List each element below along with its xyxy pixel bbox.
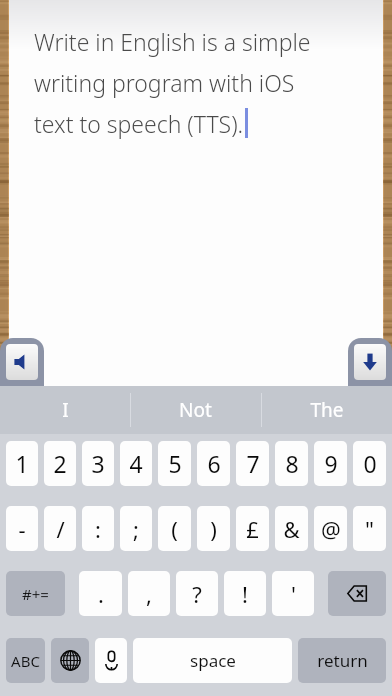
staticText: 2 (53, 448, 67, 479)
button[interactable]: ' (272, 571, 314, 616)
button[interactable]: Backspace (328, 571, 386, 616)
button[interactable]: £ (236, 506, 269, 551)
staticText: . (98, 579, 104, 609)
button[interactable]: @ (314, 506, 347, 551)
staticText: ? (192, 579, 202, 609)
staticText: / (56, 514, 65, 544)
staticText: ; (133, 514, 139, 544)
staticText: #+= (22, 584, 49, 604)
staticText: ! (242, 579, 248, 609)
staticText: text to speech (TTS). (34, 108, 244, 139)
button[interactable]: 9 (314, 441, 347, 486)
button[interactable]: " (353, 506, 386, 551)
button[interactable]: ? (176, 571, 218, 616)
button[interactable]: 0 (353, 441, 386, 486)
staticText: & (283, 514, 300, 544)
staticText: 4 (129, 448, 143, 479)
staticText: The (310, 397, 344, 423)
button[interactable]: ; (120, 506, 152, 551)
staticText: Not (179, 397, 212, 423)
button[interactable]: 7 (236, 441, 269, 486)
button[interactable]: : (82, 506, 114, 551)
staticText: : (95, 514, 101, 544)
staticText: 3 (91, 448, 105, 479)
staticText: - (18, 514, 26, 544)
staticText: return (317, 649, 368, 672)
staticText: 9 (324, 448, 338, 479)
staticText: Write in English is a simple (34, 26, 311, 57)
button[interactable]: ) (197, 506, 230, 551)
staticText: 5 (168, 448, 182, 479)
staticText: " (365, 514, 374, 544)
button[interactable]: #+= (6, 571, 65, 616)
button[interactable]: 4 (120, 441, 152, 486)
button[interactable]: I (0, 386, 130, 434)
staticText: I (62, 397, 69, 423)
button[interactable]: The (261, 386, 392, 434)
button[interactable]: 1 (6, 441, 38, 486)
button[interactable]: return (298, 638, 386, 683)
button[interactable]: - (6, 506, 38, 551)
button[interactable]: ! (224, 571, 266, 616)
button[interactable]: . (79, 571, 122, 616)
button[interactable]: Change keyboard (51, 638, 89, 683)
button[interactable]: 2 (44, 441, 76, 486)
staticText: 0 (363, 448, 377, 479)
staticText: @ (321, 514, 341, 544)
button[interactable]: & (275, 506, 308, 551)
button[interactable]: ( (158, 506, 191, 551)
staticText: ' (291, 579, 296, 609)
button[interactable]: , (128, 571, 170, 616)
button[interactable]: 3 (82, 441, 114, 486)
button[interactable]: space (133, 638, 292, 683)
staticText: 6 (207, 448, 221, 479)
button[interactable]: Dictation (95, 638, 127, 683)
staticText: ABC (11, 651, 40, 671)
button[interactable]: Not (130, 386, 261, 434)
staticText: space (190, 649, 236, 672)
button[interactable]: / (44, 506, 76, 551)
staticText: , (146, 579, 152, 609)
button[interactable]: Speak text (0, 338, 44, 386)
staticText: ) (210, 514, 217, 544)
staticText: £ (246, 514, 259, 544)
staticText: 7 (246, 448, 260, 479)
button[interactable]: 5 (158, 441, 191, 486)
button[interactable]: Hide keyboard (348, 338, 392, 386)
staticText: ( (171, 514, 178, 544)
staticText: 1 (15, 448, 29, 479)
button[interactable]: ABC (6, 638, 45, 683)
staticText: writing program with iOS (34, 67, 295, 98)
staticText: 8 (285, 448, 299, 479)
button[interactable]: 6 (197, 441, 230, 486)
button[interactable]: 8 (275, 441, 308, 486)
